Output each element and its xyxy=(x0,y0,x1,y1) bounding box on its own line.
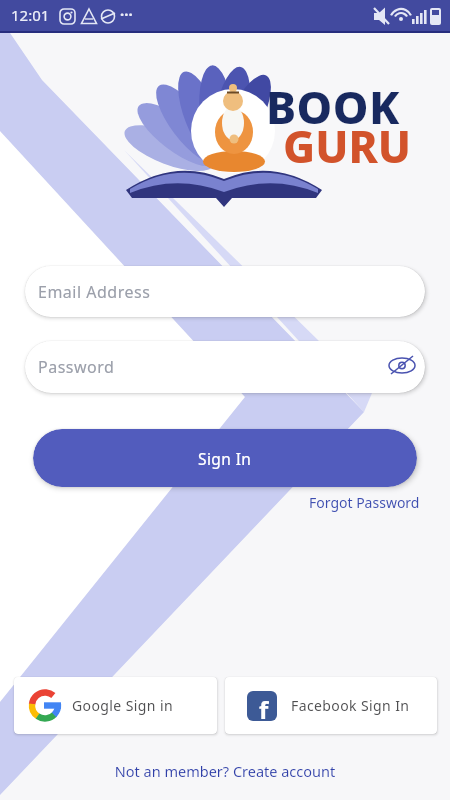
button[interactable]: Not an member? Create account xyxy=(0,758,450,784)
staticText: f xyxy=(259,693,269,721)
button[interactable]: f xyxy=(225,677,437,734)
staticText: 12:01 xyxy=(11,5,50,25)
staticText: Not an member? Create account xyxy=(0,761,450,781)
staticText: Forgot Password xyxy=(309,493,420,512)
staticText: Facebook Sign In xyxy=(291,696,410,715)
button[interactable]: Password xyxy=(25,341,425,393)
staticText: Google Sign in xyxy=(72,696,173,715)
staticText: BOOK xyxy=(266,76,400,137)
button[interactable]: Forgot Password xyxy=(305,491,420,513)
button[interactable]: Email Address xyxy=(25,266,425,317)
staticText: Password xyxy=(38,356,115,378)
staticText: GURU xyxy=(283,116,411,176)
staticText: Email Address xyxy=(38,281,151,303)
button[interactable] xyxy=(385,347,425,387)
staticText: Sign In xyxy=(198,448,252,469)
button[interactable]: Google Sign in xyxy=(14,677,217,734)
staticText: ··· xyxy=(120,4,133,24)
button[interactable]: Sign In xyxy=(33,429,417,487)
